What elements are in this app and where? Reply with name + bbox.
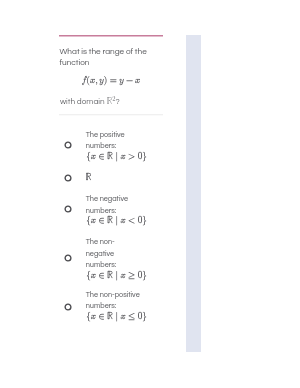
- staticText: numbers:: [86, 142, 117, 150]
- staticText: The negative: [86, 195, 129, 203]
- staticText: The non-positive: [86, 291, 141, 299]
- button[interactable]: All real numbers: [61, 171, 75, 185]
- staticText: 𝑓(𝑥, 𝑦) = 𝑦 − 𝑥: [82, 76, 141, 85]
- staticText: {𝑥 ∈ ℝ | 𝑥 ≥ 0}: [86, 271, 147, 280]
- staticText: function: [59, 58, 89, 66]
- staticText: What is the range of the: [59, 47, 147, 55]
- staticText: The non-: [86, 238, 115, 246]
- staticText: negative: [86, 250, 115, 258]
- staticText: The negative: [86, 195, 129, 203]
- staticText: ℝ: [85, 173, 91, 182]
- staticText: {𝑥 ∈ ℝ | 𝑥 < 0}: [86, 216, 147, 225]
- staticText: The non-: [86, 238, 115, 246]
- staticText: {𝑥 ∈ ℝ | 𝑥 < 0}: [86, 216, 147, 225]
- staticText: {𝑥 ∈ ℝ | 𝑥 > 0}: [86, 152, 147, 161]
- button[interactable]: The non-negative numbers: [61, 251, 75, 265]
- staticText: numbers:: [86, 261, 117, 269]
- staticText: numbers:: [86, 261, 117, 269]
- staticText: {𝑥 ∈ ℝ | 𝑥 ≤ 0}: [86, 312, 147, 321]
- staticText: ℝ: [85, 173, 91, 182]
- staticText: {𝑥 ∈ ℝ | 𝑥 > 0}: [86, 152, 147, 161]
- staticText: function: [59, 58, 89, 66]
- button[interactable]: The non-positive numbers: [61, 300, 75, 314]
- staticText: with domain ℝ2?: [60, 96, 120, 106]
- staticText: {𝑥 ∈ ℝ | 𝑥 ≥ 0}: [86, 271, 147, 280]
- staticText: numbers:: [86, 207, 117, 215]
- staticText: The positive: [86, 131, 125, 139]
- staticText: numbers:: [86, 302, 117, 310]
- staticText: numbers:: [86, 207, 117, 215]
- button[interactable]: The negative numbers: [61, 202, 75, 216]
- staticText: The non-positive: [86, 291, 141, 299]
- button[interactable]: The positive numbers: [61, 138, 75, 152]
- staticText: 𝑓(𝑥, 𝑦) = 𝑦 − 𝑥: [82, 76, 141, 85]
- staticText: What is the range of the: [59, 47, 147, 55]
- staticText: negative: [86, 250, 115, 258]
- staticText: {𝑥 ∈ ℝ | 𝑥 ≤ 0}: [86, 312, 147, 321]
- staticText: The positive: [86, 131, 125, 139]
- staticText: numbers:: [86, 142, 117, 150]
- staticText: numbers:: [86, 302, 117, 310]
